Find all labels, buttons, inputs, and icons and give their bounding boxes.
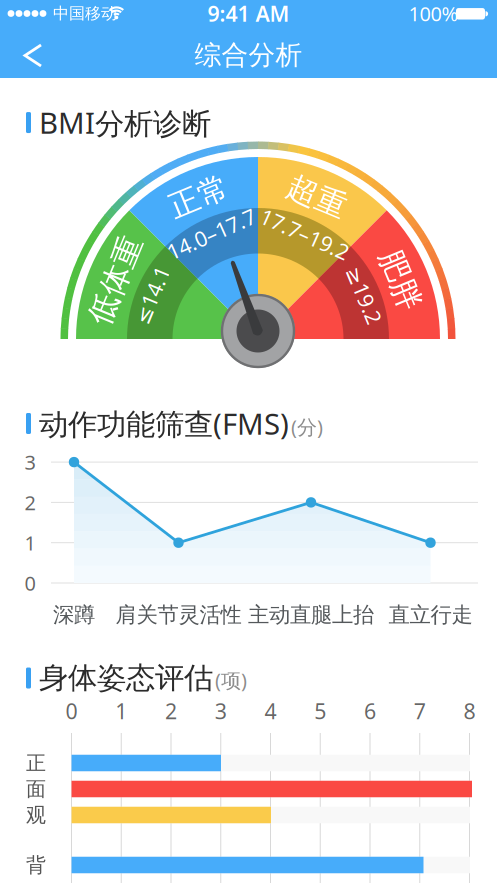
staticText: 超重 xyxy=(286,178,348,216)
staticText: 主动直腿上抬 xyxy=(248,602,374,628)
staticText: 6 xyxy=(364,697,376,725)
staticText: 7 xyxy=(414,697,426,725)
staticText: ≤14.1 xyxy=(122,281,182,309)
staticText: (分) xyxy=(291,413,323,440)
staticText: 面 xyxy=(26,777,46,801)
staticText: 背 xyxy=(26,853,46,877)
staticText: 观 xyxy=(26,803,46,827)
staticText: 3 xyxy=(215,697,227,725)
staticText: BMI分析诊断 xyxy=(39,103,211,142)
staticText: 100% xyxy=(408,0,458,27)
staticText: 9:41 AM xyxy=(207,0,289,28)
staticText: 直立行走 xyxy=(388,602,472,628)
staticText: 肩关节灵活性 xyxy=(115,602,241,628)
staticText: (项) xyxy=(215,667,247,693)
staticText: 1 xyxy=(115,697,127,725)
staticText: 正 xyxy=(26,751,46,775)
staticText: 动作功能筛查(FMS) xyxy=(39,404,289,443)
staticText: 1 xyxy=(24,529,35,556)
button[interactable]: Back xyxy=(16,36,56,75)
staticText: 0 xyxy=(65,697,77,725)
staticText: 肥胖 xyxy=(369,261,431,299)
staticText: 17.7–19.2 xyxy=(257,220,352,248)
staticText: 14.0–17.7 xyxy=(164,220,259,248)
staticText: 中国移动 xyxy=(53,4,117,23)
staticText: 3 xyxy=(24,449,35,475)
staticText: 低体重 xyxy=(69,261,162,299)
staticText: 5 xyxy=(314,697,326,725)
staticText: 综合分析 xyxy=(194,39,302,71)
staticText: 身体姿态评估 xyxy=(39,660,213,696)
staticText: 正常 xyxy=(168,178,230,216)
staticText: 2 xyxy=(24,489,35,516)
staticText: 0 xyxy=(24,570,35,596)
staticText: 深蹲 xyxy=(53,602,95,628)
staticText: 8 xyxy=(463,697,475,725)
staticText: 4 xyxy=(264,697,276,725)
staticText: 2 xyxy=(165,697,177,725)
staticText: ≥19.2 xyxy=(334,281,394,309)
